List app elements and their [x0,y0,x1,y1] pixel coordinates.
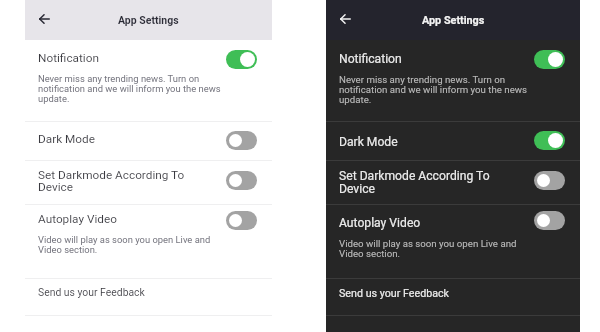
button[interactable]: Send us your Feedback [25,279,272,315]
staticText: App Settings [422,14,485,27]
staticText: Dark Mode [38,132,95,146]
button[interactable]: Notification [326,40,580,121]
button[interactable]: Notification [25,40,272,121]
staticText: Video will play as soon you open Live an… [38,234,223,255]
staticText: Send us your Feedback [339,287,450,300]
staticText: Set Darkmode According To Device [339,169,496,196]
staticText: Set Darkmode According To Device [38,168,190,193]
staticText: Autoplay Video [339,216,421,230]
button[interactable]: Send us your Feedback [326,279,580,315]
button[interactable]: Set Darkmode According To Device [25,161,272,204]
staticText: Never miss any trending news. Turn on no… [38,73,223,104]
button[interactable]: Back [332,6,358,32]
staticText: Notification [339,52,402,66]
staticText: Autoplay Video [38,212,117,226]
button[interactable]: Back [31,6,57,32]
staticText: Video will play as soon you open Live an… [339,238,530,260]
button[interactable]: Set Darkmode According To Device [326,161,580,204]
button[interactable]: Dark Mode [326,122,580,160]
button[interactable]: Switch off [226,211,257,230]
button[interactable]: Switch off [534,211,565,230]
button[interactable]: Dark Mode [25,122,272,160]
staticText: Send us your Feedback [38,286,145,298]
staticText: Notification [38,51,99,65]
staticText: App Settings [118,14,179,26]
button[interactable]: Autoplay Video [326,205,580,278]
staticText: Never miss any trending news. Turn on no… [339,74,530,106]
button[interactable]: Switch off [534,171,565,190]
staticText: Dark Mode [339,135,398,149]
button[interactable]: Switch on [534,50,565,69]
button[interactable]: Autoplay Video [25,205,272,278]
button[interactable]: Switch off [226,171,257,190]
button[interactable]: Switch on [226,50,257,69]
button[interactable]: Switch off [226,131,257,150]
button[interactable]: Switch on [534,131,565,150]
